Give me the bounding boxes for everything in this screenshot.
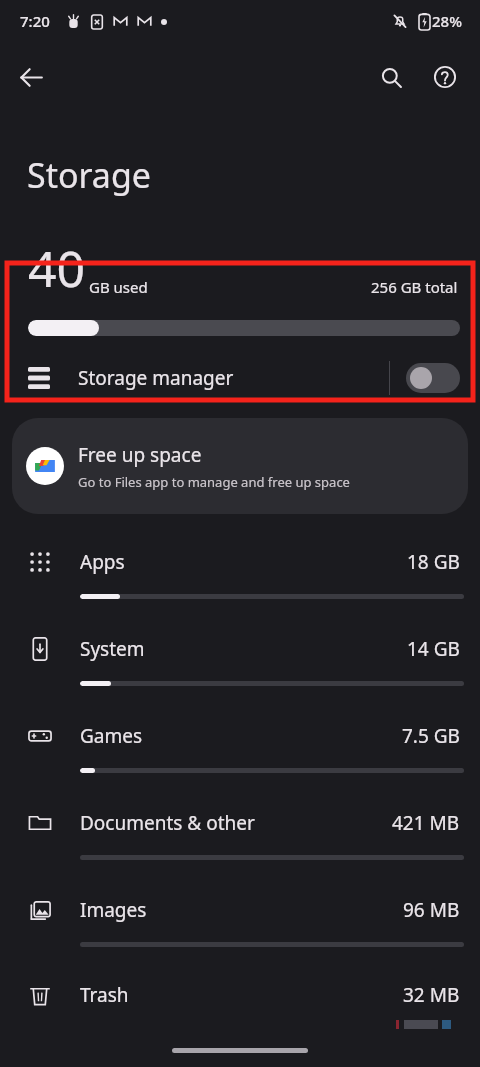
staticText: 32 MB [403, 982, 460, 1008]
staticText: 7:20 [20, 11, 50, 31]
staticText: 40 [28, 234, 86, 302]
staticText: 256 GB total [371, 277, 458, 297]
staticText: Free up space [78, 442, 202, 468]
staticText: Trash [80, 982, 129, 1008]
button[interactable]: Storage manager [0, 348, 480, 408]
staticText: Images [80, 897, 147, 923]
staticText: System [80, 636, 145, 662]
staticText: Apps [80, 549, 125, 575]
button[interactable]: Back [8, 54, 54, 100]
button[interactable]: Trash [0, 965, 480, 1025]
staticText: 28% [432, 11, 462, 31]
button[interactable]: Search [368, 54, 414, 100]
button[interactable]: Storage manager toggle [406, 363, 460, 393]
staticText: Games [80, 723, 143, 749]
staticText: Go to Files app to manage and free up sp… [78, 473, 350, 491]
staticText: 14 GB [407, 636, 460, 662]
button[interactable]: Free up space [12, 418, 468, 514]
staticText: Storage [27, 152, 152, 198]
staticText: GB used [89, 277, 148, 297]
button[interactable]: Apps [0, 530, 480, 617]
staticText: 96 MB [403, 897, 460, 923]
button[interactable]: Games [0, 704, 480, 791]
button[interactable]: Images [0, 878, 480, 965]
staticText: Documents & other [80, 810, 255, 836]
button[interactable]: System [0, 617, 480, 704]
staticText: 7.5 GB [402, 723, 460, 749]
staticText: Storage manager [78, 365, 234, 391]
staticText: 18 GB [407, 549, 460, 575]
button[interactable]: Help [422, 54, 468, 100]
staticText: 421 MB [392, 810, 460, 836]
button[interactable]: Documents & other [0, 791, 480, 878]
